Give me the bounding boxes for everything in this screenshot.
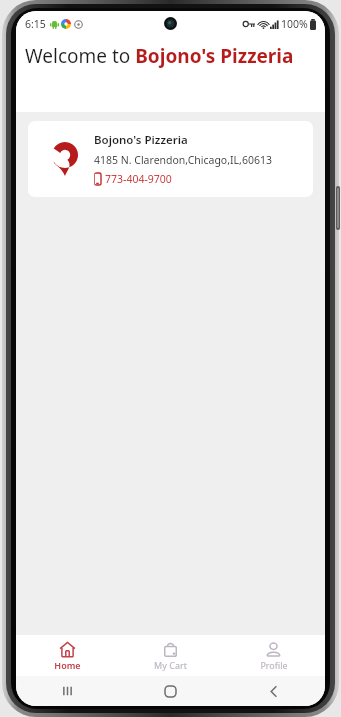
button[interactable]: Bojono's Pizzeria (28, 121, 313, 197)
staticText: Home (54, 659, 81, 671)
staticText: 100% (281, 17, 308, 31)
staticText: Profile (260, 659, 288, 671)
staticText: Bojono's Pizzeria (94, 132, 188, 148)
staticText: My Cart (154, 659, 187, 671)
button[interactable]: My Cart (119, 641, 222, 671)
staticText: 773-404-9700 (105, 172, 172, 186)
button[interactable]: Profile (222, 641, 325, 671)
button[interactable]: Recent apps (16, 676, 119, 706)
staticText: Welcome to Bojono's Pizzeria (25, 43, 294, 69)
button[interactable]: Home (16, 641, 119, 671)
button[interactable]: Back (222, 676, 325, 706)
button[interactable]: 773-404-9700 (94, 172, 172, 186)
button[interactable]: Home (119, 676, 222, 706)
staticText: 6:15 (25, 17, 46, 31)
staticText: 4185 N. Clarendon,Chicago,IL,60613 (94, 153, 272, 167)
